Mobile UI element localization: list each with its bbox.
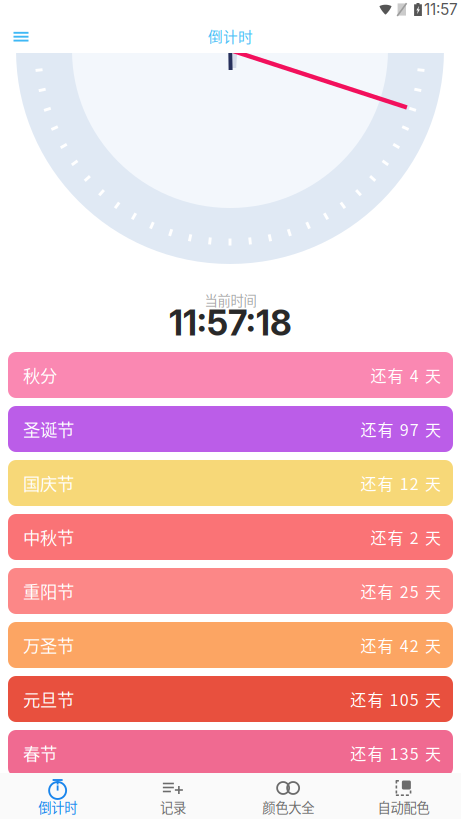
button[interactable]: 颜色大全 (230, 773, 346, 819)
button[interactable]: 重阳节 (8, 568, 453, 614)
staticText: 当前时间 (204, 290, 256, 310)
staticText: 秋分 (23, 362, 57, 388)
staticText: 记录 (160, 797, 186, 817)
button[interactable]: 圣诞节 (8, 406, 453, 452)
staticText: 倒计时 (208, 25, 253, 47)
staticText: 还有 2 天 (370, 525, 441, 549)
staticText: 还有 97 天 (360, 417, 441, 441)
staticText: 中秋节 (23, 524, 74, 550)
staticText: 元旦节 (23, 686, 74, 712)
staticText: 倒计时 (38, 797, 77, 817)
staticText: 国庆节 (23, 470, 74, 496)
staticText: 还有 105 天 (350, 687, 441, 711)
staticText: 11:57:18 (169, 302, 292, 344)
button[interactable]: 自动配色 (346, 773, 461, 819)
button[interactable]: 中秋节 (8, 514, 453, 560)
staticText: 还有 4 天 (370, 363, 441, 387)
staticText: 重阳节 (23, 578, 74, 604)
staticText: 春节 (23, 740, 57, 766)
button[interactable]: 倒计时 (0, 773, 115, 819)
staticText: 自动配色 (377, 797, 429, 817)
button[interactable]: 国庆节 (8, 460, 453, 506)
staticText: 万圣节 (23, 632, 74, 658)
staticText: 还有 12 天 (360, 471, 441, 495)
button[interactable]: 春节 (8, 730, 453, 776)
staticText: 还有 25 天 (360, 579, 441, 603)
button[interactable]: 元旦节 (8, 676, 453, 722)
staticText: 还有 135 天 (350, 741, 441, 765)
staticText: 圣诞节 (23, 416, 74, 442)
staticText: 11:57 (424, 0, 458, 19)
button[interactable]: 秋分 (8, 352, 453, 398)
button[interactable]: Menu (0, 21, 43, 53)
button[interactable]: 万圣节 (8, 622, 453, 668)
button[interactable]: 记录 (115, 773, 230, 819)
staticText: 还有 42 天 (360, 633, 441, 657)
staticText: 颜色大全 (262, 797, 314, 817)
